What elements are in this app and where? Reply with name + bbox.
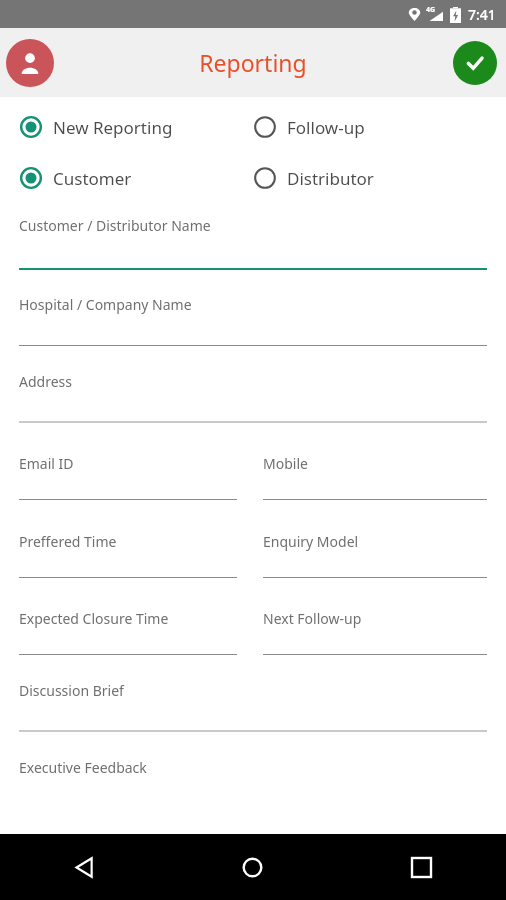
staticText: Address (19, 372, 72, 391)
button[interactable]: Hospital / Company Name (19, 270, 487, 346)
button[interactable]: Discussion Brief (19, 655, 487, 732)
button[interactable]: Email ID (19, 454, 237, 500)
staticText: Next Follow-up (263, 609, 362, 628)
button[interactable]: Preffered Time (19, 532, 237, 578)
button[interactable]: Back (0, 834, 168, 900)
button[interactable]: New Reporting (19, 115, 253, 139)
staticText: Customer / Distributor Name (19, 216, 211, 235)
staticText: Mobile (263, 454, 308, 473)
button[interactable]: Next Follow-up (263, 609, 487, 655)
button[interactable]: Customer / Distributor Name (19, 190, 487, 270)
staticText: Enquiry Model (263, 532, 359, 551)
staticText: Hospital / Company Name (19, 295, 192, 314)
staticText: Preffered Time (19, 532, 117, 551)
button[interactable]: Enquiry Model (263, 532, 487, 578)
button[interactable]: Submit (453, 41, 497, 85)
button[interactable]: Mobile (263, 454, 487, 500)
button[interactable]: Home (168, 834, 337, 900)
staticText: Distributor (287, 167, 374, 190)
button[interactable]: Follow-up (253, 115, 487, 139)
staticText: Follow-up (287, 116, 365, 139)
button[interactable]: Address (19, 346, 487, 423)
button[interactable]: Distributor (253, 166, 487, 190)
button[interactable]: Profile (6, 39, 54, 87)
staticText: New Reporting (53, 116, 173, 139)
staticText: Discussion Brief (19, 681, 124, 700)
staticText: Email ID (19, 454, 74, 473)
button[interactable]: Recent apps (337, 834, 506, 900)
staticText: Expected Closure Time (19, 609, 169, 628)
staticText: 4G (426, 5, 436, 15)
button[interactable]: Expected Closure Time (19, 609, 237, 655)
staticText: Reporting (199, 47, 307, 78)
button[interactable]: Customer (19, 166, 253, 190)
staticText: Executive Feedback (19, 758, 147, 777)
staticText: Customer (53, 167, 132, 190)
staticText: 7:41 (468, 5, 496, 24)
